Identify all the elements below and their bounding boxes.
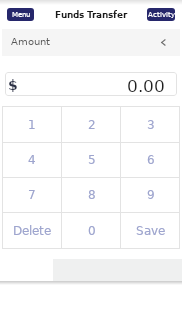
staticText: Activity (148, 11, 175, 19)
button[interactable]: Amount (2, 29, 180, 56)
button[interactable]: 1 (2, 106, 62, 142)
button[interactable]: 0 (62, 212, 121, 249)
staticText: 2 (88, 118, 96, 131)
button[interactable]: Menu (7, 8, 34, 21)
staticText: 0.00 (127, 76, 165, 96)
staticText: Amount (11, 36, 50, 47)
button[interactable]: 5 (62, 142, 121, 177)
button[interactable]: 3 (121, 106, 180, 142)
button[interactable]: Activity (147, 8, 175, 21)
staticText: 5 (88, 153, 96, 166)
button[interactable]: $ (5, 72, 177, 96)
staticText: 3 (147, 118, 155, 131)
staticText: Delete (13, 224, 51, 237)
staticText: 6 (147, 153, 155, 166)
staticText: 9 (147, 188, 155, 201)
button[interactable]: Delete (2, 212, 62, 249)
button[interactable]: 2 (62, 106, 121, 142)
staticText: Menu (12, 11, 30, 19)
staticText: Funds Transfer (55, 10, 127, 20)
button[interactable]: 8 (62, 177, 121, 212)
button[interactable]: 4 (2, 142, 62, 177)
staticText: 4 (28, 153, 36, 166)
staticText: Save (136, 224, 165, 237)
staticText: 7 (28, 188, 36, 201)
button[interactable]: 7 (2, 177, 62, 212)
button[interactable]: 6 (121, 142, 180, 177)
button[interactable]: Save (121, 212, 180, 249)
staticText: $ (8, 77, 18, 93)
button[interactable]: 9 (121, 177, 180, 212)
other: Collapse (159, 38, 168, 47)
staticText: 8 (88, 188, 96, 201)
staticText: 1 (28, 118, 36, 131)
staticText: 0 (88, 224, 96, 237)
